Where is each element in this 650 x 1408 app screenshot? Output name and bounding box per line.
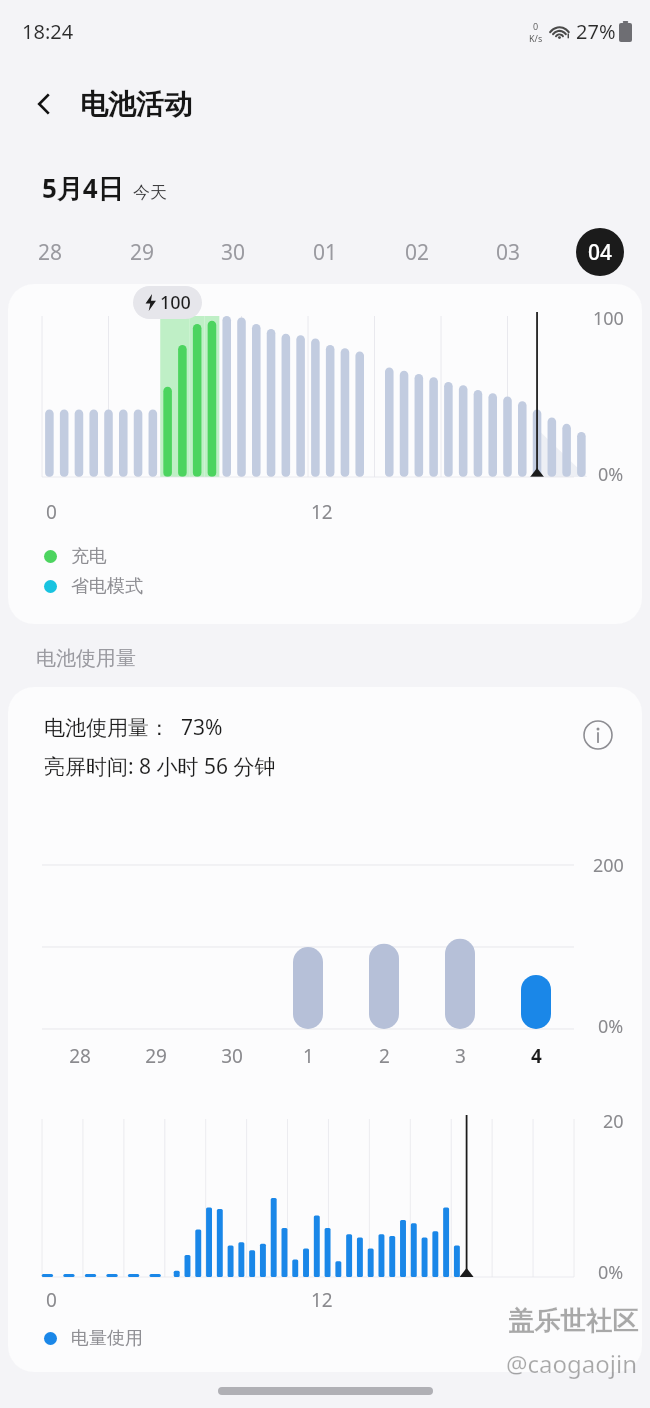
button[interactable]: 100 <box>8 284 642 624</box>
staticText: 0 <box>46 1287 57 1313</box>
staticText: 12 <box>311 499 333 525</box>
staticText: 0% <box>598 462 624 487</box>
staticText: 电池使用量： 73% <box>44 713 223 742</box>
staticText: 200 <box>593 853 624 878</box>
staticText: 亮屏时间: 8 小时 56 分钟 <box>44 752 276 781</box>
button[interactable]: Back <box>22 82 66 126</box>
staticText: 3 <box>455 1043 466 1069</box>
staticText: 2 <box>379 1043 390 1069</box>
staticText: 100 <box>593 306 624 331</box>
staticText: 12 <box>311 1287 333 1313</box>
staticText: 0% <box>598 1014 624 1039</box>
staticText: 4 <box>531 1043 542 1069</box>
staticText: 27% <box>576 18 616 45</box>
button[interactable]: 30 <box>209 228 257 276</box>
staticText: 充电 <box>71 545 107 568</box>
staticText: 28 <box>69 1043 91 1069</box>
staticText: 100 <box>160 290 191 315</box>
staticText: 0 <box>533 20 539 32</box>
staticText: 29 <box>145 1043 167 1069</box>
button[interactable]: 01 <box>301 228 349 276</box>
staticText: 03 <box>496 238 521 267</box>
staticText: 02 <box>405 238 430 267</box>
staticText: 30 <box>221 1043 243 1069</box>
staticText: K/s <box>529 32 543 44</box>
staticText: 20 <box>603 1109 624 1134</box>
staticText: 电池活动 <box>80 87 192 122</box>
staticText: 28 <box>38 238 63 267</box>
button[interactable]: 29 <box>118 228 166 276</box>
button[interactable]: 28 <box>26 228 74 276</box>
button[interactable]: 03 <box>484 228 532 276</box>
staticText: @caogaojin <box>506 1347 638 1380</box>
staticText: 29 <box>130 238 155 267</box>
staticText: 1 <box>303 1043 314 1069</box>
staticText: 04 <box>588 238 613 267</box>
button[interactable]: Info <box>576 713 620 757</box>
staticText: 今天 <box>133 182 167 203</box>
staticText: 省电模式 <box>71 575 143 598</box>
staticText: 30 <box>221 238 246 267</box>
staticText: 0% <box>598 1260 624 1285</box>
button[interactable]: 04 <box>576 228 624 276</box>
staticText: 0 <box>46 499 57 525</box>
staticText: 01 <box>313 238 338 267</box>
button[interactable]: 电池使用量： 73% <box>8 687 642 1372</box>
staticText: 电量使用 <box>71 1327 143 1350</box>
staticText: 18:24 <box>22 18 74 45</box>
staticText: 5月4日 <box>42 170 124 206</box>
staticText: 盖乐世社区 <box>508 1305 638 1338</box>
staticText: 电池使用量 <box>36 646 136 671</box>
button[interactable]: 02 <box>393 228 441 276</box>
